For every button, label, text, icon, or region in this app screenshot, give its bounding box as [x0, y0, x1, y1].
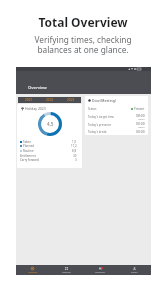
- staticText: Routine: [23, 149, 34, 153]
- button[interactable]: Calendar: [49, 265, 83, 275]
- staticText: Messages: [95, 271, 105, 274]
- staticText: Total Overview: [38, 14, 128, 30]
- button[interactable]: Today's presence: [88, 121, 145, 129]
- staticText: 4,5: [47, 121, 54, 127]
- staticText: 2023: [67, 98, 75, 102]
- staticText: 2022: [46, 98, 54, 102]
- staticText: Overview: [28, 85, 47, 91]
- staticText: Today's target time: [88, 115, 114, 119]
- button[interactable]: Planned: [20, 144, 77, 149]
- staticText: Present: [134, 107, 145, 111]
- staticText: Taken: [23, 140, 31, 144]
- staticText: 00:00: [136, 129, 145, 134]
- staticText: 08:00: [136, 113, 145, 118]
- button[interactable]: Routine: [20, 149, 77, 154]
- button[interactable]: Today's break: [88, 129, 145, 135]
- button[interactable]: Entitlement: [20, 154, 77, 159]
- staticText: 1,0: [72, 140, 77, 144]
- staticText: Entitlement: [20, 154, 36, 158]
- staticText: 30: [73, 154, 77, 158]
- button[interactable]: Today's target time: [88, 113, 145, 121]
- staticText: Status: [88, 107, 97, 111]
- staticText: Calendar: [62, 271, 71, 274]
- button[interactable]: Messages: [83, 265, 117, 275]
- staticText: Door/Meeting/: [92, 98, 117, 103]
- button[interactable]: Carry forward: [20, 158, 77, 163]
- staticText: Hours: [138, 126, 145, 129]
- staticText: 00:00: [136, 121, 145, 126]
- staticText: Holiday 2023: [25, 106, 46, 111]
- staticText: Planned: [23, 144, 35, 148]
- button[interactable]: 2022: [39, 97, 60, 103]
- staticText: Today's presence: [88, 123, 112, 127]
- button[interactable]: Overview: [16, 265, 49, 275]
- staticText: Carry forward: [20, 158, 39, 162]
- staticText: Today's break: [88, 130, 107, 134]
- staticText: 3: [75, 158, 77, 162]
- button[interactable]: Taken: [20, 140, 77, 145]
- staticText: Profile: [131, 271, 138, 274]
- staticText: 11,2: [71, 144, 77, 148]
- button[interactable]: 2023: [60, 97, 81, 103]
- staticText: 8,8: [72, 149, 77, 153]
- button[interactable]: Status: [88, 105, 145, 113]
- staticText: Hours: [138, 118, 145, 121]
- button[interactable]: 2021: [18, 97, 39, 103]
- staticText: Verifying times, checking balances at on…: [34, 34, 132, 55]
- staticText: Overview: [28, 271, 38, 274]
- staticText: 2021: [25, 98, 33, 102]
- button[interactable]: Profile: [117, 265, 151, 275]
